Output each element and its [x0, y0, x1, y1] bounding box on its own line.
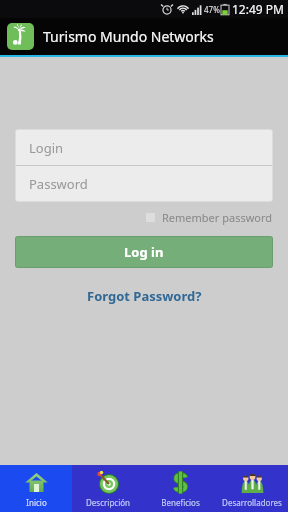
- staticText: 12:49 PM: [232, 1, 284, 17]
- button[interactable]: Log in: [16, 237, 272, 267]
- staticText: Beneficios: [161, 497, 200, 508]
- staticText: Forgot Password?: [87, 287, 202, 305]
- staticText: 47%: [204, 4, 220, 15]
- staticText: Remember password: [162, 210, 273, 225]
- staticText: Inicio: [26, 497, 47, 508]
- staticText: Login: [29, 139, 64, 157]
- button[interactable]: Remember password: [146, 208, 273, 227]
- staticText: Turismo Mundo Networks: [43, 27, 214, 46]
- button[interactable]: Descripción: [72, 465, 144, 512]
- button[interactable]: Beneficios: [144, 465, 216, 512]
- staticText: Log in: [124, 243, 164, 261]
- staticText: Descripción: [86, 497, 130, 508]
- button[interactable]: Inicio: [0, 465, 72, 512]
- staticText: Desarrolladores: [222, 497, 282, 508]
- staticText: Password: [29, 175, 88, 193]
- button[interactable]: Password: [16, 166, 272, 201]
- button[interactable]: Desarrolladores: [216, 465, 288, 512]
- button[interactable]: Forgot Password?: [81, 284, 208, 308]
- button[interactable]: Login: [16, 130, 272, 165]
